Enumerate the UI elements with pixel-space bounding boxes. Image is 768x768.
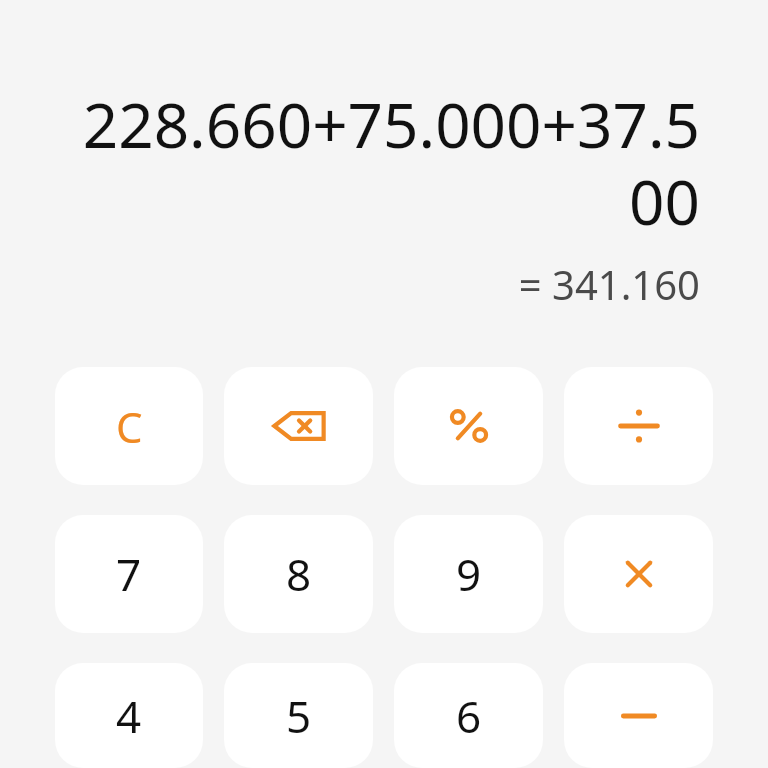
staticText: 6	[456, 686, 482, 746]
button[interactable]: 6	[394, 663, 543, 768]
staticText: C	[116, 398, 143, 455]
button[interactable]: 4	[55, 663, 203, 768]
button[interactable]: Backspace	[224, 367, 373, 485]
staticText: 8	[286, 544, 312, 604]
button[interactable]: Minus	[564, 663, 713, 768]
button[interactable]: 8	[224, 515, 373, 633]
button[interactable]: 9	[394, 515, 543, 633]
staticText: 9	[456, 544, 482, 604]
button[interactable]: Multiply	[564, 515, 713, 633]
staticText: 228.660+75.000+37.500	[68, 82, 700, 243]
button[interactable]: 7	[55, 515, 203, 633]
staticText: 7	[116, 544, 142, 604]
staticText: 4	[116, 686, 142, 746]
staticText: 5	[286, 686, 312, 746]
button[interactable]: 5	[224, 663, 373, 768]
button[interactable]: Percent	[394, 367, 543, 485]
button[interactable]: Divide	[564, 367, 713, 485]
button[interactable]: C	[55, 367, 203, 485]
staticText: = 341.160	[68, 257, 700, 311]
